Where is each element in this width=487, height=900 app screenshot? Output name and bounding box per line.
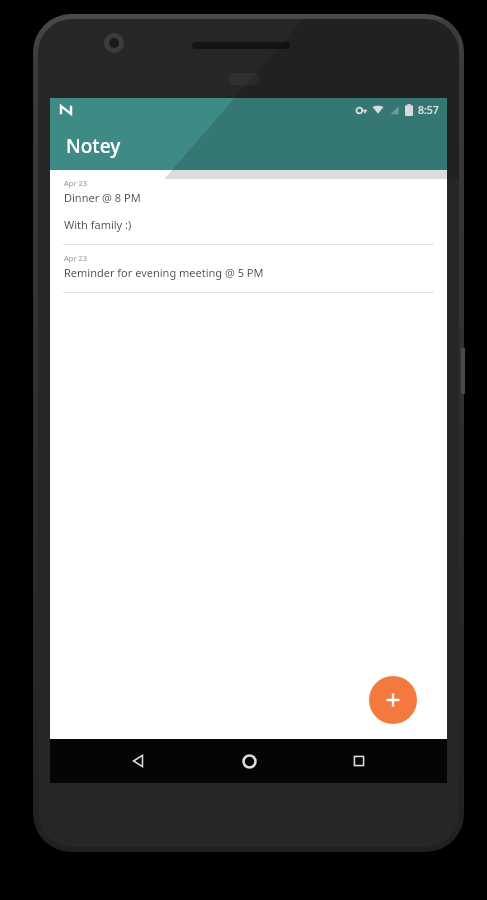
button[interactable]: Apr 23 [50,245,447,292]
staticText: Apr 23 [64,253,88,263]
staticText: Dinner @ 8 PM [64,190,141,205]
staticText: Reminder for evening meeting @ 5 PM [64,265,264,280]
button[interactable]: Apr 23 [50,170,447,244]
button[interactable]: Back [116,739,160,783]
button[interactable]: Add note [369,676,417,724]
staticText: With family :) [64,217,132,232]
button[interactable]: Recent apps [337,739,381,783]
staticText: Notey [66,133,121,159]
button[interactable]: Home [227,739,271,783]
staticText: Apr 23 [64,178,88,188]
staticText: 8:57 [418,103,439,117]
